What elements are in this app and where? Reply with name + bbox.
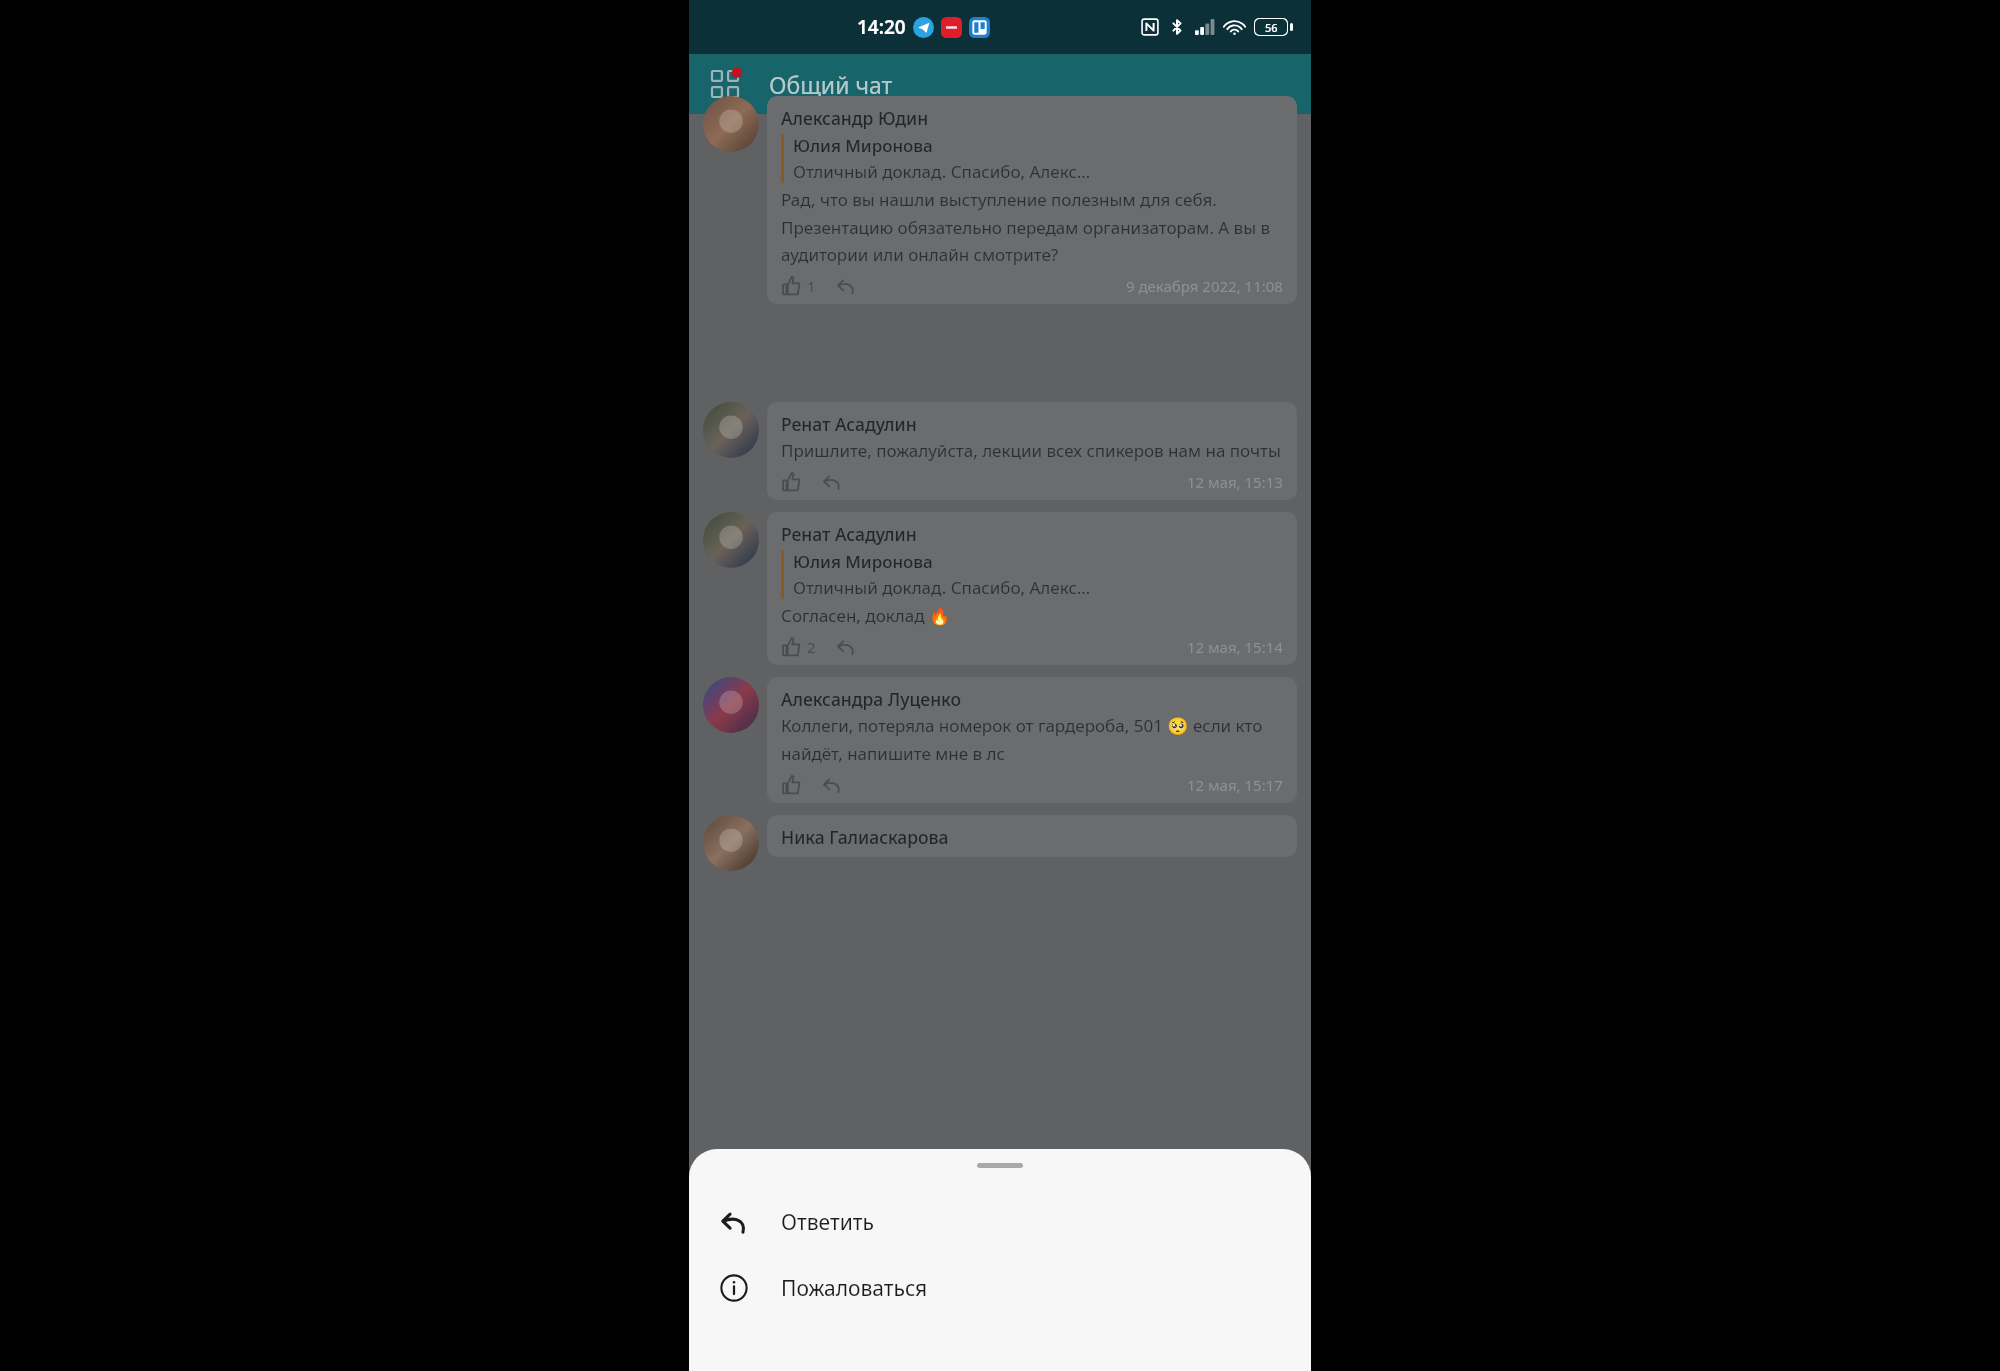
staticText: Рад, что вы нашли выступление полезным д…	[781, 188, 1283, 266]
button[interactable]: Ренат Асадулин	[703, 402, 1297, 500]
button[interactable]: Ответить	[822, 472, 842, 492]
staticText: Ренат Асадулин	[781, 412, 917, 436]
staticText: 12 мая, 15:13	[1187, 472, 1283, 492]
button[interactable]: Ответить	[689, 1194, 1311, 1250]
button[interactable]: Ответить	[836, 276, 856, 296]
staticText: 2	[807, 637, 816, 657]
staticText: Общий чат	[769, 69, 893, 100]
staticText: Юлия Миронова	[793, 134, 933, 157]
staticText: Пожаловаться	[781, 1274, 928, 1303]
staticText: Отличный доклад. Спасибо, Алекс…	[793, 160, 1091, 183]
staticText: 9 декабря 2022, 11:08	[1126, 276, 1283, 296]
staticText: 12 мая, 15:14	[1187, 637, 1283, 657]
button[interactable]: Ответить	[836, 637, 856, 657]
button[interactable]: Александр Юдин	[703, 96, 1297, 304]
staticText: 1	[807, 276, 816, 296]
staticText: Коллеги, потеряла номерок от гардероба, …	[781, 714, 1283, 765]
button[interactable]: Нравится	[781, 471, 806, 492]
button[interactable]: Ника Галиаскарова	[703, 815, 1297, 871]
button[interactable]: Ответить	[822, 775, 842, 795]
staticText: Александр Юдин	[781, 106, 929, 130]
staticText: Юлия Миронова	[793, 550, 933, 573]
staticText: Пришлите, пожалуйста, лекции всех спикер…	[781, 439, 1281, 462]
staticText: Ответить	[781, 1208, 874, 1237]
staticText: Согласен, доклад 🔥	[781, 604, 951, 627]
button[interactable]: Меню	[703, 62, 747, 106]
staticText: Отличный доклад. Спасибо, Алекс…	[793, 576, 1091, 599]
staticText: Ника Галиаскарова	[781, 825, 949, 849]
button[interactable]: Нравится	[781, 275, 820, 296]
button[interactable]: Ренат Асадулин	[703, 512, 1297, 665]
button[interactable]: Нравится	[781, 636, 820, 657]
button[interactable]: Александра Луценко	[703, 677, 1297, 803]
button[interactable]: Пожаловаться	[689, 1260, 1311, 1316]
staticText: 56	[1265, 20, 1278, 35]
staticText: Александра Луценко	[781, 687, 962, 711]
staticText: 12 мая, 15:17	[1187, 775, 1283, 795]
button[interactable]: Нравится	[781, 774, 806, 795]
staticText: 14:20	[857, 14, 906, 40]
staticText: Ренат Асадулин	[781, 522, 917, 546]
